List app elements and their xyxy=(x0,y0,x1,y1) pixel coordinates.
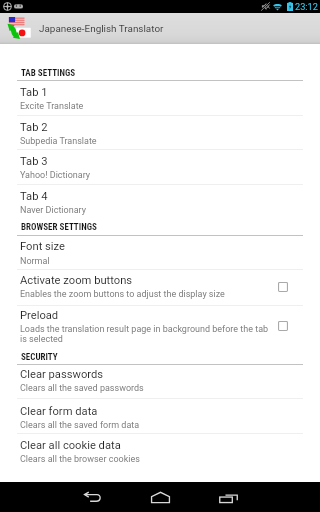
button[interactable] xyxy=(0,79,320,114)
button[interactable]: Japanese-English Translator xyxy=(0,13,320,44)
staticText: Naver Dictionary xyxy=(20,205,292,216)
staticText: BROWSER SETTINGS xyxy=(21,222,97,233)
button[interactable] xyxy=(0,361,320,398)
button[interactable] xyxy=(0,267,320,304)
staticText: Font size xyxy=(20,240,65,253)
button[interactable]: Back xyxy=(70,482,114,512)
staticText: Tab 1 xyxy=(20,86,48,99)
staticText: Enables the zoom buttons to adjust the d… xyxy=(20,289,292,300)
staticText: Clears all the browser cookies xyxy=(20,454,292,465)
staticText: Clears all the saved form data xyxy=(20,420,292,431)
staticText: Activate zoom buttons xyxy=(20,274,133,287)
staticText: SECURITY xyxy=(21,352,58,363)
staticText: Preload xyxy=(20,309,59,322)
button[interactable] xyxy=(0,114,320,149)
button[interactable] xyxy=(0,432,320,466)
staticText: Tab 3 xyxy=(20,155,48,168)
staticText: Subpedia Translate xyxy=(20,136,292,147)
button[interactable]: Recent apps xyxy=(206,482,250,512)
button[interactable] xyxy=(0,148,320,183)
staticText: Yahoo! Dictionary xyxy=(20,170,292,181)
staticText: 23:12 xyxy=(295,1,318,12)
staticText: Excite Translate xyxy=(20,101,292,112)
staticText: Tab 4 xyxy=(20,190,48,203)
staticText: Japanese-English Translator xyxy=(39,23,164,35)
staticText: Clear all cookie data xyxy=(20,439,121,452)
staticText: Clear passwords xyxy=(20,368,104,381)
staticText: Loads the translation result page in bac… xyxy=(20,324,270,344)
button[interactable] xyxy=(0,398,320,432)
button[interactable] xyxy=(0,183,320,217)
staticText: Clear form data xyxy=(20,405,98,418)
button[interactable] xyxy=(0,302,320,336)
staticText: TAB SETTINGS xyxy=(21,68,76,79)
staticText: Clears all the saved passwords xyxy=(20,383,292,394)
staticText: Tab 2 xyxy=(20,121,48,134)
button[interactable] xyxy=(0,233,320,269)
staticText: Normal xyxy=(20,256,292,267)
button[interactable]: Home xyxy=(138,482,182,512)
